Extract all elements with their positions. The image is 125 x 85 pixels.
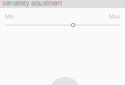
button[interactable]: Record: [49, 77, 81, 85]
staticText: Max: [109, 13, 120, 20]
button[interactable]: Sensitivity: [5, 23, 120, 27]
staticText: Sensitivity adjustment: [2, 0, 62, 7]
staticText: Min: [5, 13, 14, 20]
